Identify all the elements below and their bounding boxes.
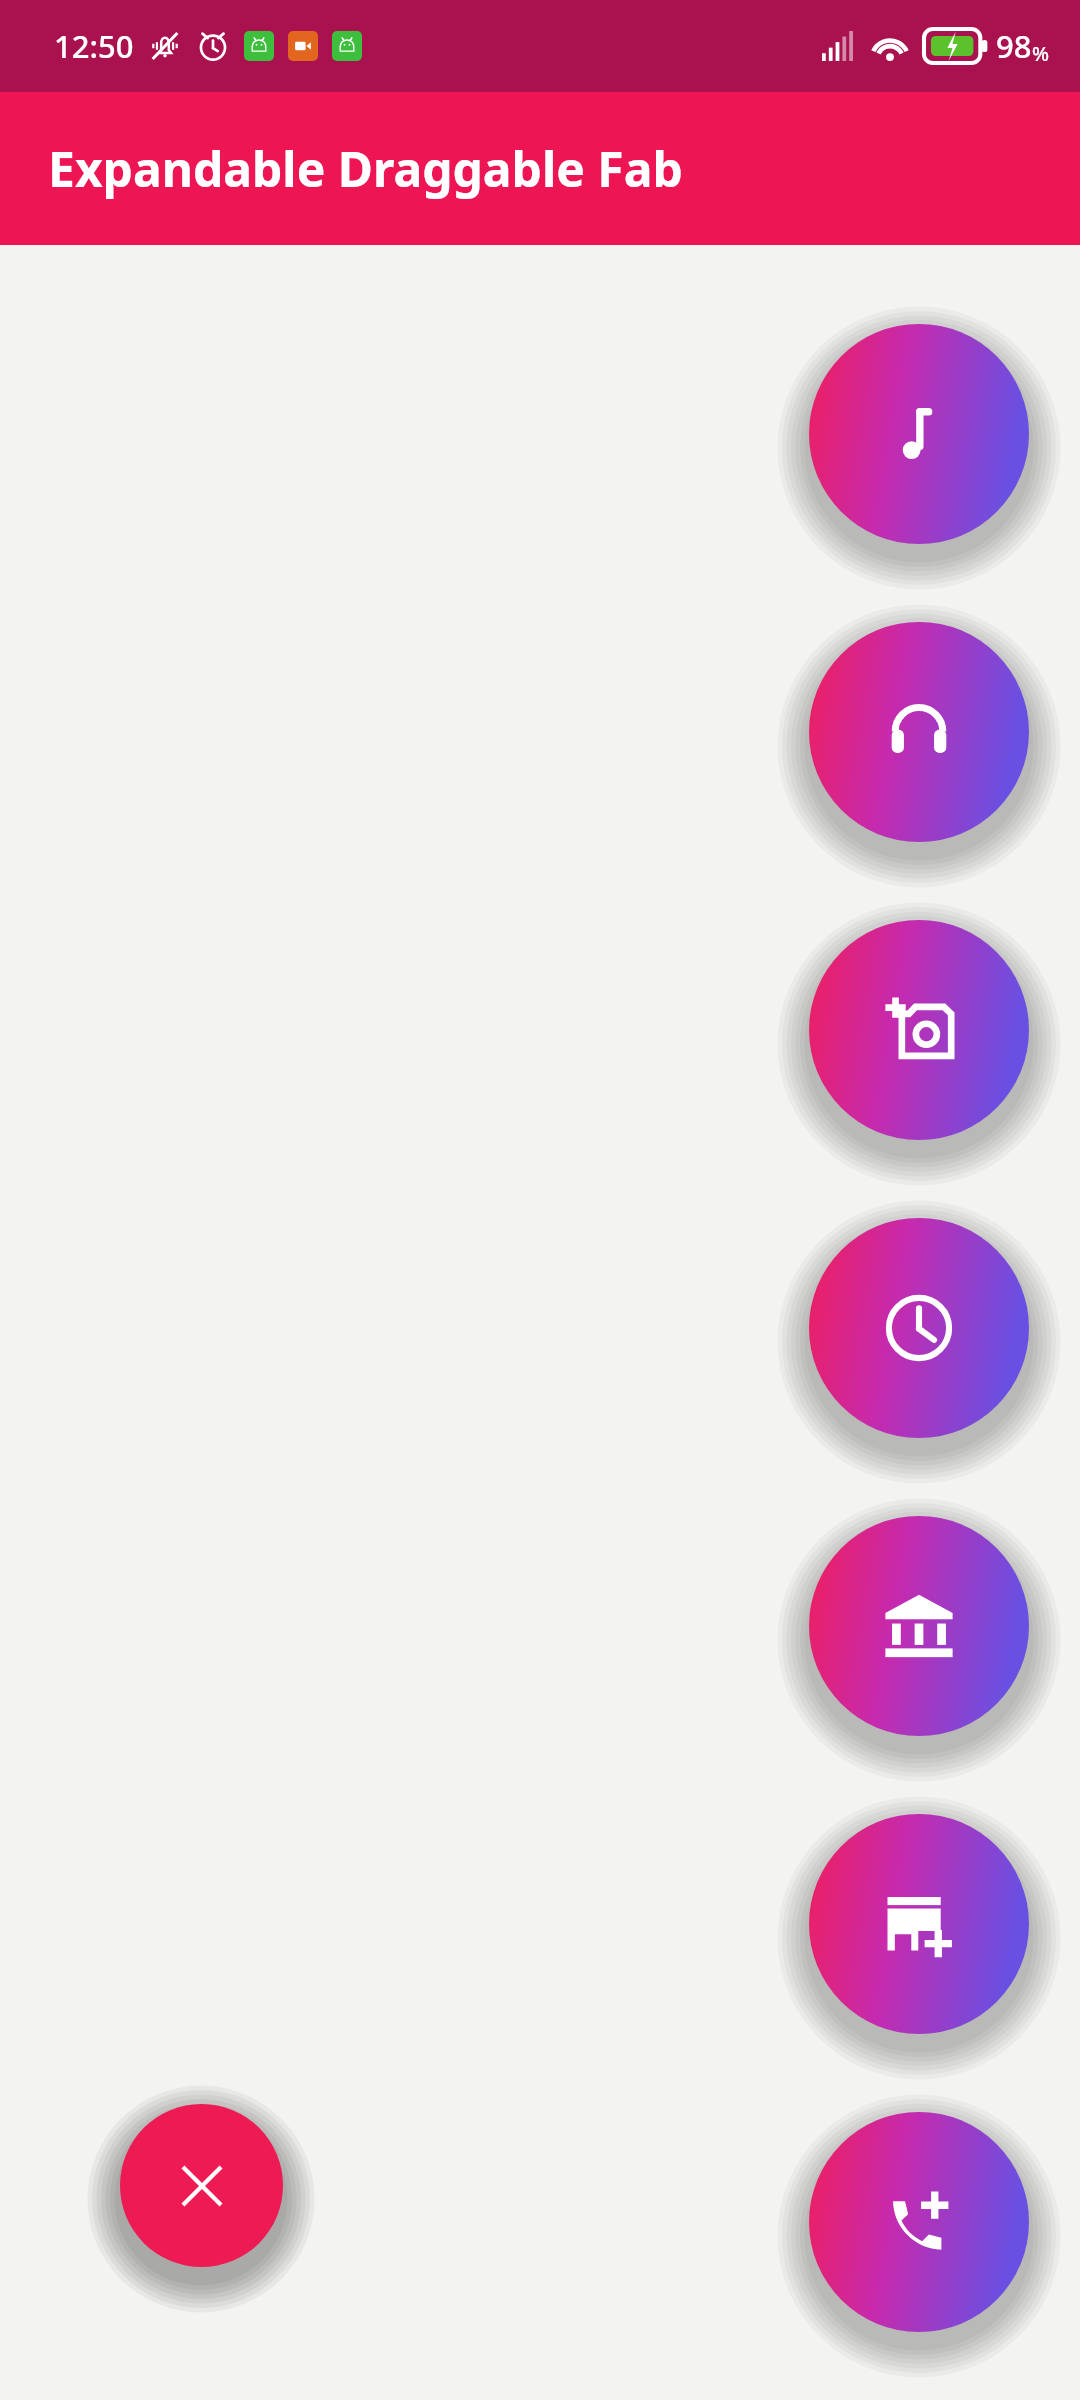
staticText: 98: [996, 25, 1032, 67]
button[interactable]: Close: [120, 2104, 283, 2267]
button[interactable]: Add call: [809, 2112, 1029, 2332]
button[interactable]: Bank: [809, 1516, 1029, 1736]
button[interactable]: Clock: [809, 1218, 1029, 1438]
button[interactable]: Add business: [809, 1814, 1029, 2034]
staticText: Expandable Draggable Fab: [48, 136, 683, 201]
staticText: 12:50: [54, 25, 134, 67]
button[interactable]: Add a photo: [809, 920, 1029, 1140]
staticText: %: [1032, 40, 1050, 67]
button[interactable]: Music: [809, 324, 1029, 544]
button[interactable]: Headphones: [809, 622, 1029, 842]
